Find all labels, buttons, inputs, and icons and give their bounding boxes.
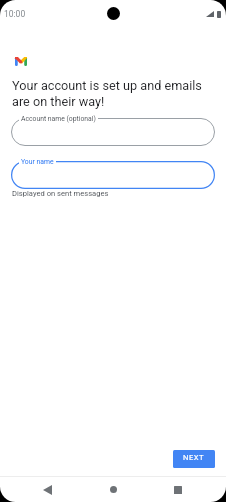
staticText: Account name (optional) (21, 115, 96, 123)
staticText: Your name (21, 158, 54, 166)
staticText: Your account is set up and emails are on… (12, 78, 208, 109)
staticText: Displayed on sent messages (12, 189, 109, 198)
staticText: 10:00 (4, 9, 26, 19)
button[interactable]: Home (88, 477, 138, 502)
button[interactable]: NEXT (173, 450, 215, 468)
staticText: NEXT (183, 453, 205, 462)
button[interactable]: Back (22, 477, 73, 502)
button[interactable]: Your name (11, 161, 215, 189)
button[interactable]: Account name (optional) (11, 118, 215, 146)
button[interactable]: Recent apps (153, 477, 203, 502)
